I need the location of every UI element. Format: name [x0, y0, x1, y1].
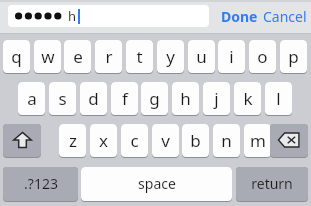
staticText: z	[69, 129, 77, 152]
staticText: y	[166, 45, 175, 68]
button[interactable]: space	[81, 167, 232, 202]
staticText: o	[257, 45, 268, 68]
staticText: r	[105, 45, 113, 68]
button[interactable]: s	[49, 82, 76, 116]
staticText: f	[122, 87, 128, 110]
staticText: b	[190, 129, 201, 152]
staticText: k	[243, 87, 253, 110]
button[interactable]: y	[157, 40, 184, 74]
button[interactable]: Cancel	[261, 6, 308, 26]
button[interactable]: Shift	[3, 124, 41, 158]
staticText: return	[251, 174, 293, 193]
staticText: s	[58, 87, 67, 110]
button[interactable]: f	[111, 82, 138, 116]
button[interactable]: g	[141, 82, 168, 116]
button[interactable]: n	[213, 124, 240, 158]
button[interactable]: .?123	[3, 167, 78, 202]
staticText: p	[288, 45, 299, 68]
button[interactable]: p	[280, 40, 307, 74]
staticText: m	[250, 129, 266, 152]
button[interactable]: c	[121, 124, 148, 158]
button[interactable]: v	[152, 124, 179, 158]
staticText: g	[149, 87, 160, 110]
button[interactable]: e	[64, 40, 91, 74]
staticText: d	[88, 87, 99, 110]
button[interactable]: i	[218, 40, 245, 74]
staticText: q	[11, 45, 22, 68]
staticText: t	[136, 45, 143, 68]
staticText: h	[180, 87, 191, 110]
button[interactable]: m	[244, 124, 271, 158]
staticText: i	[229, 45, 234, 68]
staticText: Done	[221, 7, 258, 26]
staticText: space	[138, 174, 176, 193]
button[interactable]: h	[8, 5, 209, 27]
staticText: u	[196, 45, 207, 68]
button[interactable]: w	[34, 40, 61, 74]
staticText: .?123	[24, 174, 58, 193]
button[interactable]: o	[249, 40, 276, 74]
button[interactable]: r	[95, 40, 122, 74]
staticText: c	[130, 129, 139, 152]
staticText: h	[68, 7, 77, 25]
button[interactable]: Done	[219, 6, 260, 26]
staticText: e	[73, 45, 83, 68]
staticText: Cancel	[263, 7, 307, 26]
staticText: v	[161, 129, 170, 152]
button[interactable]: q	[3, 40, 30, 74]
staticText: l	[276, 87, 281, 110]
button[interactable]: return	[236, 167, 308, 202]
button[interactable]: b	[182, 124, 209, 158]
button[interactable]: t	[126, 40, 153, 74]
button[interactable]: l	[265, 82, 292, 116]
button[interactable]: j	[203, 82, 230, 116]
staticText: n	[221, 129, 232, 152]
button[interactable]: u	[188, 40, 215, 74]
button[interactable]: x	[90, 124, 117, 158]
button[interactable]: d	[80, 82, 107, 116]
staticText: a	[27, 87, 37, 110]
staticText: x	[99, 129, 108, 152]
staticText: j	[214, 87, 219, 110]
button[interactable]: Backspace	[270, 124, 308, 158]
button[interactable]: z	[59, 124, 86, 158]
button[interactable]: h	[172, 82, 199, 116]
staticText: w	[41, 45, 55, 68]
button[interactable]: a	[18, 82, 45, 116]
button[interactable]: k	[234, 82, 261, 116]
